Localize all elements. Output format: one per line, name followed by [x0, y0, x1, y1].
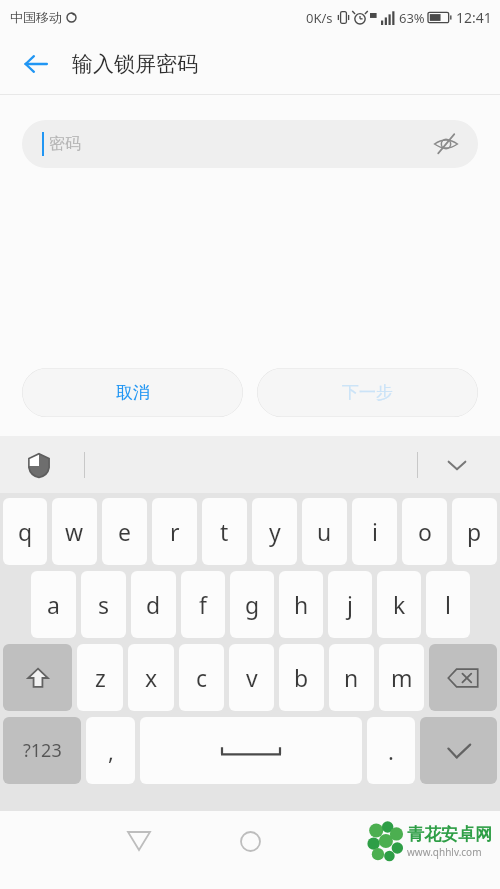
staticText: c: [196, 662, 208, 693]
button[interactable]: Shift: [3, 644, 72, 711]
staticText: .: [388, 736, 394, 766]
button[interactable]: q: [3, 498, 47, 565]
staticText: z: [95, 662, 106, 693]
staticText: m: [391, 662, 413, 693]
button[interactable]: v: [229, 644, 274, 711]
button[interactable]: u: [302, 498, 347, 565]
staticText: q: [18, 516, 33, 547]
staticText: x: [145, 662, 158, 693]
staticText: j: [347, 589, 353, 620]
button[interactable]: 取消: [22, 368, 243, 417]
button[interactable]: l: [426, 571, 470, 638]
staticText: g: [245, 589, 260, 620]
staticText: v: [246, 662, 258, 693]
button[interactable]: .: [367, 717, 415, 784]
button[interactable]: y: [252, 498, 297, 565]
staticText: 取消: [116, 382, 150, 403]
staticText: y: [269, 516, 281, 547]
staticText: 中国移动: [10, 9, 62, 25]
button[interactable]: s: [81, 571, 126, 638]
staticText: n: [344, 662, 359, 693]
staticText: w: [65, 516, 84, 547]
button[interactable]: Home: [226, 817, 274, 865]
button[interactable]: h: [279, 571, 323, 638]
button[interactable]: Security: [22, 448, 56, 482]
button[interactable]: 下一步: [257, 368, 478, 417]
staticText: k: [393, 589, 406, 620]
staticText: b: [294, 662, 309, 693]
button[interactable]: n: [329, 644, 374, 711]
staticText: www.qhhlv.com: [407, 845, 482, 859]
button[interactable]: k: [377, 571, 421, 638]
button[interactable]: d: [131, 571, 176, 638]
staticText: 青花安卓网: [407, 824, 492, 845]
button[interactable]: 密码: [22, 120, 478, 168]
staticText: d: [146, 589, 161, 620]
button[interactable]: z: [77, 644, 123, 711]
button[interactable]: g: [230, 571, 274, 638]
button[interactable]: Backspace: [429, 644, 497, 711]
button[interactable]: t: [202, 498, 247, 565]
staticText: 63%: [399, 9, 425, 27]
staticText: h: [294, 589, 309, 620]
staticText: r: [170, 516, 180, 547]
button[interactable]: p: [452, 498, 497, 565]
button[interactable]: f: [181, 571, 225, 638]
button[interactable]: x: [128, 644, 174, 711]
button[interactable]: b: [279, 644, 324, 711]
staticText: e: [118, 516, 131, 547]
button[interactable]: r: [152, 498, 197, 565]
staticText: s: [98, 589, 110, 620]
staticText: o: [418, 516, 432, 547]
staticText: t: [220, 516, 229, 547]
button[interactable]: m: [379, 644, 424, 711]
staticText: i: [372, 516, 378, 547]
staticText: 输入锁屏密码: [72, 51, 198, 77]
button[interactable]: Enter: [420, 717, 497, 784]
button[interactable]: Back: [14, 42, 58, 86]
button[interactable]: j: [328, 571, 372, 638]
button[interactable]: c: [179, 644, 224, 711]
button[interactable]: w: [52, 498, 97, 565]
staticText: u: [317, 516, 332, 547]
button[interactable]: Show password: [430, 128, 462, 160]
button[interactable]: e: [102, 498, 147, 565]
staticText: ?123: [23, 738, 62, 763]
button[interactable]: ,: [86, 717, 135, 784]
button[interactable]: a: [31, 571, 76, 638]
button[interactable]: Space: [140, 717, 362, 784]
staticText: p: [467, 516, 482, 547]
button[interactable]: o: [402, 498, 447, 565]
staticText: 12:41: [456, 8, 492, 27]
button[interactable]: Back: [115, 817, 163, 865]
button[interactable]: Hide keyboard: [440, 448, 474, 482]
staticText: 0K/s: [306, 9, 333, 27]
button[interactable]: ?123: [3, 717, 81, 784]
staticText: 下一步: [342, 382, 393, 403]
button[interactable]: i: [352, 498, 397, 565]
staticText: a: [47, 589, 60, 620]
staticText: f: [199, 589, 207, 620]
staticText: ,: [108, 736, 114, 766]
staticText: 密码: [49, 134, 81, 154]
staticText: l: [445, 589, 451, 620]
